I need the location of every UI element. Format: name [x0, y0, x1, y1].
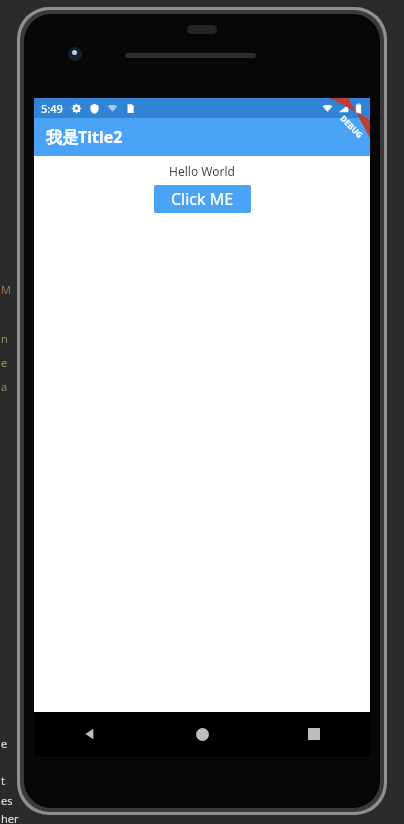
- button[interactable]: Back: [34, 712, 146, 756]
- staticText: Click ME: [171, 188, 234, 210]
- button[interactable]: Recents: [258, 712, 370, 756]
- button[interactable]: Home: [146, 712, 258, 756]
- staticText: 我是Title2: [46, 126, 123, 148]
- staticText: e: [1, 355, 8, 370]
- staticText: DEBUG: [338, 113, 366, 140]
- staticText: n: [1, 331, 8, 346]
- staticText: 5:49: [41, 101, 63, 116]
- staticText: Hello World: [169, 163, 235, 179]
- staticText: e: [1, 736, 8, 751]
- staticText: M: [1, 282, 11, 297]
- staticText: es: [1, 793, 13, 808]
- staticText: a: [1, 379, 8, 394]
- staticText: t: [1, 773, 5, 788]
- staticText: her: [1, 811, 19, 824]
- button[interactable]: Click ME: [154, 185, 251, 213]
